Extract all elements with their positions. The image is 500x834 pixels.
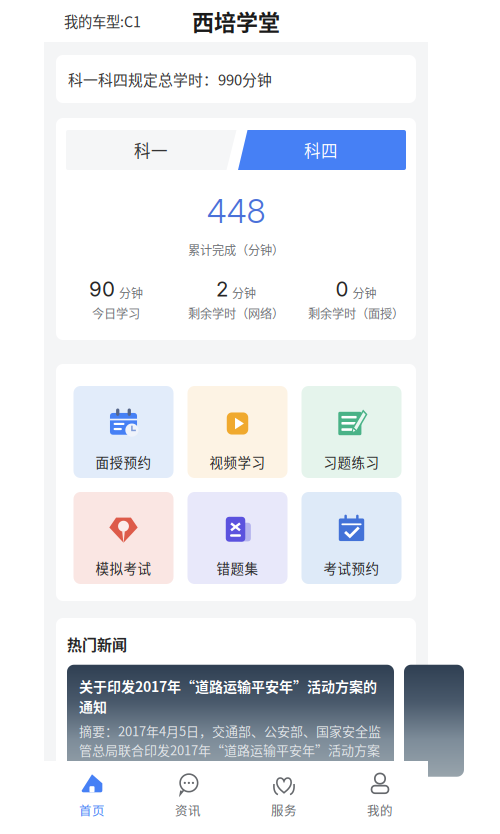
- button[interactable]: 模拟考试: [73, 492, 173, 584]
- staticText: 模拟考试: [95, 558, 151, 577]
- staticText: 习题练习: [323, 452, 379, 471]
- staticText: 资讯: [175, 801, 201, 819]
- staticText: 首页: [79, 801, 105, 819]
- button[interactable]: 首页: [44, 761, 140, 834]
- staticText: 热门新闻: [67, 633, 127, 655]
- staticText: 分钟: [352, 284, 376, 301]
- staticText: 西培学堂: [192, 5, 280, 37]
- staticText: 90: [89, 277, 115, 301]
- staticText: 我的: [367, 801, 393, 819]
- staticText: 剩余学时（面授）: [308, 304, 404, 322]
- staticText: 分钟: [232, 284, 256, 301]
- staticText: 服务: [271, 801, 297, 819]
- staticText: 面授预约: [95, 452, 151, 471]
- button[interactable]: 资讯: [140, 761, 236, 834]
- button[interactable]: 我的: [332, 761, 428, 834]
- staticText: 科四: [304, 138, 338, 162]
- staticText: 摘要：2017年4月5日，交通部、公安部、国家安全监管总局联合印发2017年“道…: [79, 721, 381, 778]
- staticText: 448: [206, 191, 265, 231]
- staticText: 科一: [134, 138, 168, 162]
- staticText: 0: [335, 277, 348, 301]
- button[interactable]: 习题练习: [301, 386, 401, 478]
- staticText: 今日学习: [92, 304, 140, 322]
- button[interactable]: 视频学习: [187, 386, 287, 478]
- button[interactable]: 服务: [236, 761, 332, 834]
- button[interactable]: 考试预约: [301, 492, 401, 584]
- staticText: 分钟: [119, 284, 143, 301]
- staticText: 视频学习: [209, 452, 265, 471]
- staticText: 考试预约: [323, 558, 379, 577]
- staticText: 剩余学时（网络）: [188, 304, 284, 322]
- staticText: 科一科四规定总学时：990分钟: [68, 68, 272, 90]
- button[interactable]: 错题集: [187, 492, 287, 584]
- staticText: 2: [216, 277, 228, 301]
- staticText: 我的车型:C1: [64, 11, 141, 31]
- button[interactable]: 科四: [236, 130, 406, 170]
- button[interactable]: 面授预约: [73, 386, 173, 478]
- button[interactable]: 关于印发2017年“道路运输平安年”活动方案的通知: [67, 665, 394, 777]
- staticText: 错题集: [216, 558, 258, 577]
- staticText: 累计完成（分钟）: [188, 241, 284, 259]
- button[interactable]: 科一: [66, 130, 236, 170]
- staticText: 关于印发2017年“道路运输平安年”活动方案的通知: [79, 676, 377, 716]
